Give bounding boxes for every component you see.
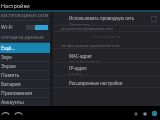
button[interactable]: Батарея (0, 80, 50, 89)
button[interactable]: Home (14, 109, 23, 118)
staticText: Отключено (69, 22, 90, 26)
staticText: MAC-адрес (69, 53, 93, 59)
staticText: Батарея (1, 81, 21, 88)
staticText: Использовать проводную сеть (69, 15, 135, 21)
button[interactable]: MAC-адрес (53, 49, 160, 63)
staticText: устройства проводной сети (61, 26, 113, 31)
staticText: Ещё... (1, 45, 16, 52)
button[interactable]: Wi-Fi (0, 21, 50, 33)
button[interactable]: Экран (0, 62, 50, 71)
button[interactable]: Аккаунты (0, 98, 50, 107)
button[interactable]: Приложения (0, 89, 50, 98)
staticText: БЕСПРОВОДНЫЕ СЕТИ (1, 13, 49, 19)
staticText: Нет устройств (92, 34, 121, 40)
button[interactable]: Использовать проводную сеть (53, 12, 160, 26)
staticText: Настройки (1, 2, 30, 9)
button[interactable]: Звук (0, 53, 50, 62)
staticText: Память (1, 72, 20, 79)
staticText: 0.0.0.0 (69, 72, 81, 76)
staticText: Расширенные настройки (69, 80, 123, 86)
button[interactable]: Память (0, 71, 50, 80)
staticText: Экран (1, 63, 16, 70)
staticText: Wi-Fi (1, 24, 13, 31)
staticText: Звук (1, 54, 12, 61)
staticText: 00:00:00:00:00:00 (69, 60, 101, 63)
button[interactable]: Ещё... (0, 43, 50, 53)
staticText: ПЕРЕДАЧА ДАННЫХ (1, 35, 44, 41)
button[interactable]: Back (1, 109, 10, 118)
button[interactable]: Расширенные настройки (53, 76, 160, 88)
button[interactable]: IP-адрес (53, 63, 160, 76)
staticText: IP-адрес (69, 65, 87, 71)
staticText: конфигурация проводной сети (61, 43, 120, 48)
staticText: Аккаунты (1, 99, 24, 106)
staticText: Приложения (1, 90, 33, 97)
